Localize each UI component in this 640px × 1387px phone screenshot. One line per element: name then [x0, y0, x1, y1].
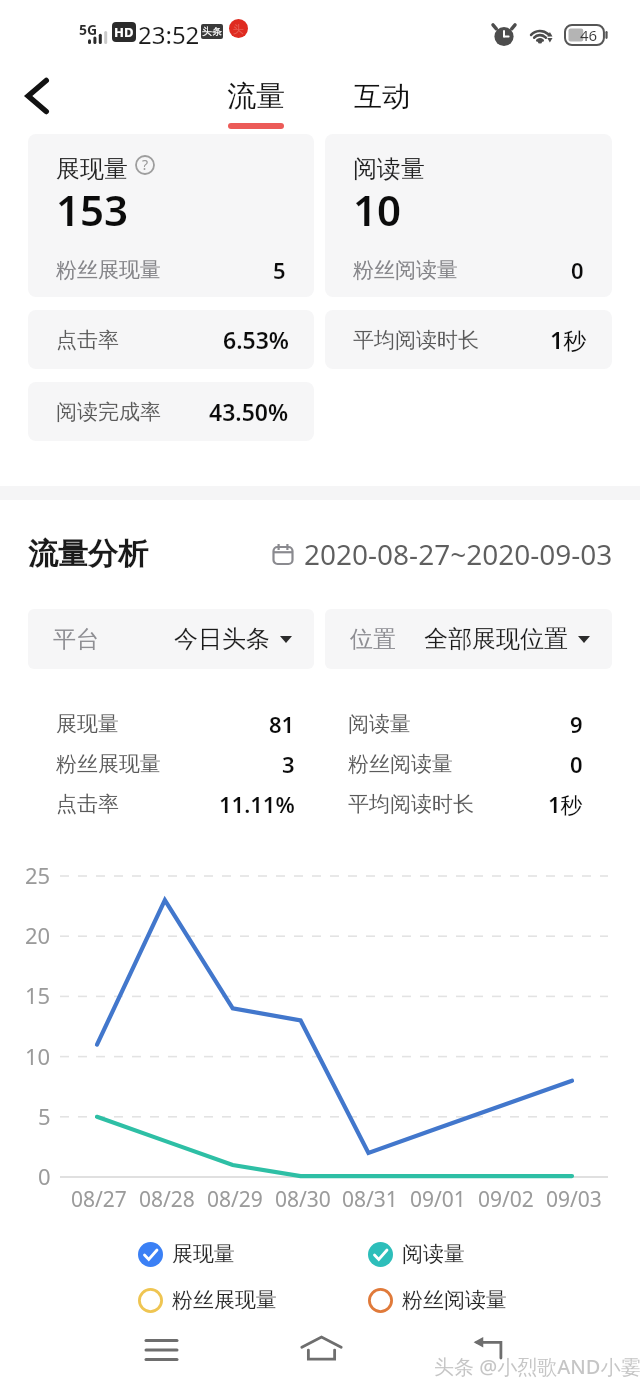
- staticText: 点击率: [56, 327, 119, 353]
- staticText: 5: [273, 255, 286, 285]
- button[interactable]: Back: [448, 1318, 528, 1380]
- staticText: 08/30: [275, 1185, 331, 1209]
- staticText: 0: [570, 749, 583, 779]
- button[interactable]: 2020-08-27~2020-09-03: [272, 535, 613, 573]
- staticText: 09/01: [410, 1185, 466, 1209]
- staticText: 3: [282, 749, 295, 779]
- staticText: 头: [233, 22, 244, 36]
- staticText: 9: [570, 709, 583, 739]
- staticText: 08/31: [342, 1185, 398, 1209]
- staticText: 6.53%: [223, 324, 289, 355]
- button[interactable]: 阅读量: [368, 1241, 465, 1267]
- button[interactable]: 平均阅读时长: [325, 310, 612, 369]
- staticText: 全部展现位置: [424, 624, 568, 654]
- staticText: 0: [38, 1161, 51, 1189]
- staticText: 08/27: [71, 1185, 127, 1209]
- staticText: 平均阅读时长: [353, 327, 479, 353]
- staticText: 1秒: [550, 324, 587, 355]
- button[interactable]: 互动: [338, 79, 426, 125]
- staticText: 展现量: [56, 711, 119, 737]
- staticText: 43.50%: [209, 396, 289, 427]
- staticText: 09/03: [546, 1185, 602, 1209]
- button[interactable]: Home: [281, 1318, 361, 1380]
- staticText: 0: [571, 255, 584, 285]
- staticText: 头条: [202, 25, 222, 38]
- staticText: 25: [25, 860, 51, 888]
- staticText: 5: [38, 1101, 51, 1129]
- button[interactable]: 阅读量: [325, 134, 612, 297]
- staticText: 粉丝展现量: [56, 751, 161, 777]
- staticText: 粉丝展现量: [56, 257, 161, 283]
- staticText: 20: [25, 920, 51, 948]
- staticText: 位置: [350, 625, 396, 654]
- staticText: 粉丝阅读量: [402, 1287, 507, 1313]
- staticText: 5G: [79, 20, 98, 39]
- button[interactable]: Back: [14, 73, 60, 119]
- button[interactable]: 展现量: [138, 1241, 235, 1267]
- staticText: 粉丝阅读量: [348, 751, 453, 777]
- staticText: ?: [142, 155, 149, 174]
- staticText: 今日头条: [174, 624, 270, 654]
- button[interactable]: 点击率: [28, 310, 314, 369]
- staticText: 08/28: [139, 1185, 195, 1209]
- staticText: 流量分析: [28, 535, 148, 573]
- staticText: 23:52: [138, 18, 200, 51]
- button[interactable]: 流量: [212, 78, 300, 133]
- button[interactable]: 阅读完成率: [28, 382, 314, 441]
- staticText: 平均阅读时长: [348, 791, 474, 817]
- staticText: 阅读量: [402, 1241, 465, 1267]
- staticText: 阅读完成率: [56, 399, 161, 425]
- button[interactable]: 展现量: [28, 134, 314, 297]
- staticText: 81: [269, 709, 295, 739]
- staticText: 09/02: [478, 1185, 534, 1209]
- staticText: 展现量: [56, 154, 128, 184]
- staticText: 平台: [53, 625, 99, 654]
- staticText: 11.11%: [219, 789, 295, 819]
- button[interactable]: 平台: [28, 609, 314, 669]
- staticText: 点击率: [56, 791, 119, 817]
- staticText: 10: [353, 181, 402, 238]
- staticText: 2020-08-27~2020-09-03: [304, 535, 613, 573]
- button[interactable]: 粉丝阅读量: [368, 1287, 507, 1313]
- staticText: HD: [114, 23, 134, 41]
- button[interactable]: 粉丝展现量: [138, 1287, 277, 1313]
- staticText: 粉丝展现量: [172, 1287, 277, 1313]
- staticText: 15: [25, 980, 51, 1008]
- staticText: 互动: [354, 79, 410, 114]
- staticText: 阅读量: [353, 154, 425, 184]
- staticText: 阅读量: [348, 711, 411, 737]
- staticText: 1秒: [548, 789, 583, 819]
- button[interactable]: 位置: [325, 609, 612, 669]
- staticText: 粉丝阅读量: [353, 257, 458, 283]
- staticText: 流量: [227, 78, 285, 115]
- staticText: 头条 @小烈歌AND小霎颂: [434, 1353, 640, 1380]
- staticText: 08/29: [207, 1185, 263, 1209]
- button[interactable]: Menu: [121, 1319, 201, 1381]
- staticText: 46: [580, 25, 598, 45]
- staticText: 10: [25, 1041, 51, 1069]
- staticText: 153: [56, 181, 129, 238]
- staticText: 展现量: [172, 1241, 235, 1267]
